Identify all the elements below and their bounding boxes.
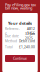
staticText: Total (5, 45, 13, 49)
staticText: AB12 3456 (27, 27, 35, 35)
staticText: £1,240.00 (19, 45, 35, 49)
staticText: Pay eFiling.gov tax bill now, waiting (5, 3, 36, 10)
staticText: Due date (5, 34, 19, 38)
staticText: Reference (5, 27, 20, 35)
staticText: Continue (13, 56, 27, 61)
staticText: Method (5, 39, 17, 43)
staticText: 31 Jan 2025 (25, 32, 35, 40)
staticText: Your details (8, 20, 32, 26)
staticText: Debit card (19, 39, 35, 43)
button[interactable]: Continue (5, 55, 35, 62)
